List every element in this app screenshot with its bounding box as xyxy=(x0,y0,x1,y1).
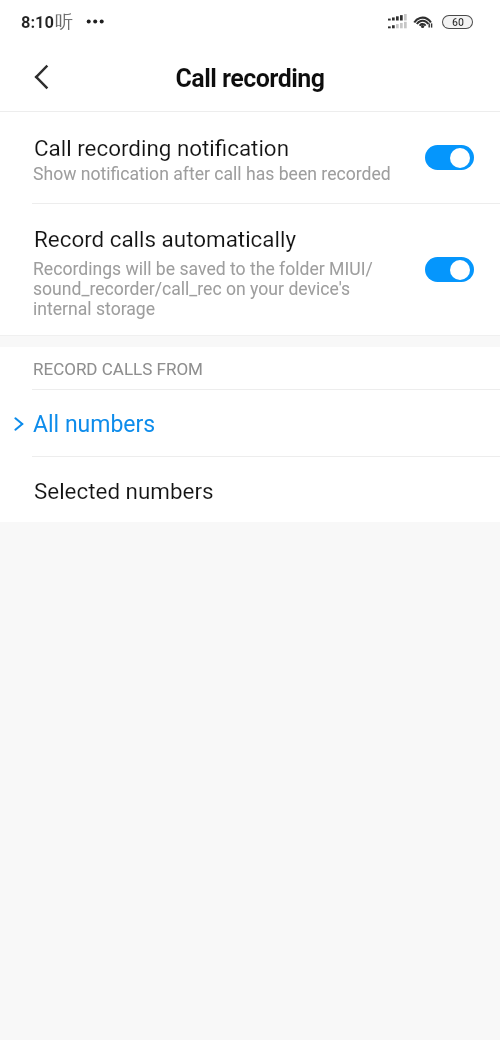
staticText: Record calls automatically xyxy=(34,226,296,252)
staticText: internal storage xyxy=(33,299,156,320)
staticText: sound_recorder/call_rec on your device's xyxy=(33,279,351,300)
staticText: 8:10 xyxy=(21,13,55,32)
staticText: Recordings will be saved to the folder M… xyxy=(33,259,373,280)
staticText: Selected numbers xyxy=(34,478,214,504)
staticText: All numbers xyxy=(33,411,156,438)
staticText: 听 xyxy=(55,11,73,34)
staticText: Call recording notification xyxy=(34,135,289,161)
button[interactable]: Selected numbers xyxy=(0,457,500,522)
staticText: 60 xyxy=(452,16,464,28)
button[interactable]: Toggle xyxy=(425,145,474,170)
staticText: Show notification after call has been re… xyxy=(33,164,391,185)
button[interactable]: Record calls automatically xyxy=(0,203,500,335)
button[interactable]: Call recording notification xyxy=(0,112,500,203)
staticText: Call recording xyxy=(175,64,325,93)
button[interactable]: All numbers xyxy=(0,390,500,456)
button[interactable]: Back xyxy=(14,54,60,100)
button[interactable]: Toggle xyxy=(425,257,474,282)
staticText: RECORD CALLS FROM xyxy=(33,359,203,379)
